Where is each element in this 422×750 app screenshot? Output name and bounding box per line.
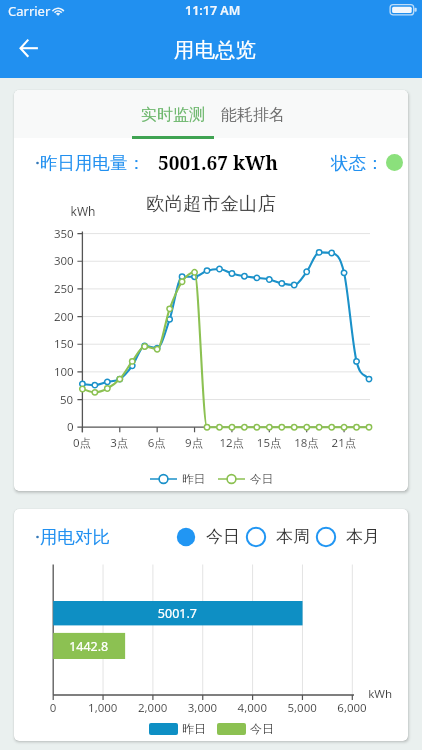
button[interactable]: 今日 <box>176 526 240 547</box>
staticText: 用电对比 <box>40 526 110 548</box>
staticText: 5001.67 kWh <box>158 150 278 176</box>
staticText: 今日 <box>250 721 274 736</box>
staticText: 昨日 <box>182 721 206 736</box>
staticText: 昨日用电量： <box>40 152 145 174</box>
staticText: 昨日 <box>182 472 205 486</box>
staticText: 实时监测 <box>141 105 205 125</box>
staticText: 本周 <box>276 526 310 547</box>
button[interactable]: 实时监测 <box>132 90 214 138</box>
button[interactable]: 今日 <box>218 472 273 486</box>
staticText: 今日 <box>250 472 273 486</box>
button[interactable]: 昨日 <box>149 721 206 736</box>
button[interactable]: 本周 <box>246 526 310 547</box>
button[interactable]: 昨日 <box>150 472 205 486</box>
button[interactable]: Back <box>9 28 49 68</box>
staticText: 今日 <box>206 526 240 547</box>
staticText: 能耗排名 <box>221 105 285 125</box>
staticText: 本月 <box>346 526 380 547</box>
button[interactable]: 能耗排名 <box>221 90 285 138</box>
staticText: 用电总览 <box>174 37 256 63</box>
button[interactable]: 今日 <box>217 721 274 736</box>
button[interactable]: 本月 <box>316 526 380 547</box>
staticText: 状态： <box>331 152 384 174</box>
staticText: 欧尚超市金山店 <box>146 192 276 215</box>
